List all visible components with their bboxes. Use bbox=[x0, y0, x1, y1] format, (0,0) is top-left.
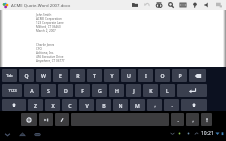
button[interactable]: H bbox=[109, 84, 124, 97]
button[interactable]: Shift bbox=[2, 99, 26, 111]
button[interactable]: Z bbox=[28, 99, 43, 111]
staticText: R bbox=[76, 72, 80, 79]
staticText: I bbox=[145, 72, 147, 79]
button[interactable]: U bbox=[121, 69, 136, 82]
button[interactable]: P bbox=[172, 69, 187, 82]
button[interactable]: G bbox=[92, 84, 107, 97]
button[interactable]: Hide keyboard bbox=[1, 128, 13, 140]
button[interactable]: F bbox=[75, 84, 90, 97]
button[interactable]: B bbox=[96, 99, 111, 111]
button[interactable]: V bbox=[79, 99, 94, 111]
button[interactable]: ?123 bbox=[2, 84, 22, 97]
button[interactable]: Attach bbox=[189, 0, 201, 10]
button[interactable]: Y bbox=[104, 69, 119, 82]
button[interactable]: . bbox=[171, 113, 184, 126]
staticText: , bbox=[154, 102, 156, 108]
button[interactable]: O bbox=[155, 69, 170, 82]
button[interactable]: More bbox=[213, 0, 225, 10]
button[interactable]: Q bbox=[19, 69, 34, 82]
staticText: L bbox=[166, 87, 169, 94]
button[interactable]: Backspace bbox=[189, 69, 206, 82]
staticText: K bbox=[149, 87, 153, 94]
button[interactable]: Sound bbox=[201, 0, 213, 10]
button[interactable]: S bbox=[41, 84, 56, 97]
button[interactable]: D bbox=[58, 84, 73, 97]
staticText: P bbox=[178, 72, 182, 79]
staticText: Charlie Jones CFO Acltiona, Inc. 456 Exe… bbox=[36, 43, 65, 63]
button[interactable]: Shift bbox=[181, 99, 207, 111]
staticText: S bbox=[47, 87, 50, 94]
staticText: Q bbox=[24, 72, 29, 79]
staticText: A bbox=[30, 87, 34, 94]
staticText: O bbox=[160, 72, 165, 79]
button[interactable]: E bbox=[53, 69, 68, 82]
button[interactable]: T bbox=[87, 69, 102, 82]
staticText: H bbox=[115, 87, 119, 94]
button[interactable]: Search bbox=[165, 0, 177, 10]
button[interactable]: Undo bbox=[141, 0, 153, 10]
staticText: J bbox=[133, 87, 135, 94]
staticText: ?123 bbox=[8, 88, 17, 93]
button[interactable]: J bbox=[126, 84, 141, 97]
button[interactable]: Open bbox=[129, 0, 141, 10]
staticText: . bbox=[177, 117, 179, 123]
staticText: X bbox=[51, 102, 55, 109]
button[interactable]: R bbox=[70, 69, 85, 82]
button[interactable]: L bbox=[160, 84, 175, 97]
button[interactable]: Slash bbox=[55, 113, 69, 126]
staticText: W bbox=[41, 72, 46, 79]
staticText: Tab bbox=[6, 73, 13, 78]
staticText: G bbox=[98, 87, 102, 94]
staticText: E bbox=[59, 72, 62, 79]
staticText: 10:21 bbox=[201, 130, 214, 137]
button[interactable]: X bbox=[45, 99, 60, 111]
staticText: D bbox=[64, 87, 68, 94]
button[interactable]: Tab bbox=[2, 69, 17, 82]
staticText: T bbox=[93, 72, 96, 79]
staticText: F bbox=[81, 87, 84, 94]
staticText: N bbox=[118, 102, 123, 109]
button[interactable]: . bbox=[164, 99, 179, 111]
staticText: . bbox=[171, 102, 173, 108]
button[interactable]: Settings bbox=[21, 113, 37, 126]
button[interactable]: Enter bbox=[177, 84, 207, 97]
staticText: U bbox=[127, 72, 131, 79]
staticText: John Smith ACME Corporation 123 Corporat… bbox=[36, 13, 64, 33]
button[interactable]: I bbox=[138, 69, 153, 82]
button[interactable]: Voice input bbox=[201, 113, 212, 126]
button[interactable]: , bbox=[147, 99, 162, 111]
button[interactable]: N bbox=[113, 99, 128, 111]
button[interactable]: A bbox=[24, 84, 39, 97]
staticText: B bbox=[102, 102, 106, 109]
button[interactable]: Next bbox=[39, 113, 53, 126]
button[interactable]: K bbox=[143, 84, 158, 97]
button[interactable]: View bbox=[177, 0, 189, 10]
button[interactable]: M bbox=[130, 99, 145, 111]
button[interactable]: Recents bbox=[31, 128, 43, 140]
button[interactable]: C bbox=[62, 99, 77, 111]
staticText: , bbox=[192, 117, 194, 123]
button[interactable]: , bbox=[186, 113, 199, 126]
staticText: Y bbox=[110, 72, 114, 79]
staticText: Z bbox=[34, 102, 37, 109]
staticText: C bbox=[68, 102, 72, 109]
button[interactable]: W bbox=[36, 69, 51, 82]
staticText: M bbox=[135, 102, 140, 109]
button[interactable]: Format bbox=[153, 0, 165, 10]
staticText: V bbox=[85, 102, 89, 109]
staticText: ACME Quote-Word 2007.docx bbox=[11, 2, 71, 8]
button[interactable]: Home bbox=[16, 128, 28, 140]
